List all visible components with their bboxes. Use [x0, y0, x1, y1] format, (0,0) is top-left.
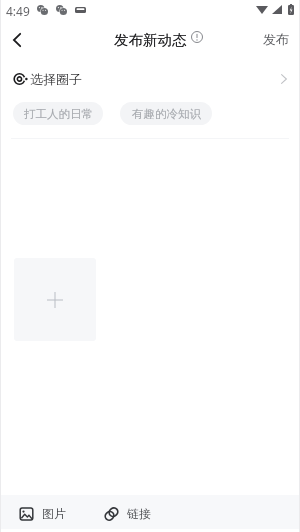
button[interactable]: 链接 — [101, 503, 154, 524]
button[interactable]: Back — [1, 20, 33, 60]
button[interactable]: Info — [188, 28, 206, 46]
staticText: 4:49 — [6, 3, 30, 19]
staticText: 发布新动态 — [114, 31, 187, 49]
button[interactable]: 有趣的冷知识 — [120, 102, 212, 125]
staticText: 图片 — [42, 506, 66, 521]
staticText: 有趣的冷知识 — [132, 107, 201, 121]
staticText: 发布新动态 — [114, 31, 187, 49]
button[interactable]: 打工人的日常 — [13, 102, 103, 125]
staticText: 发布 — [263, 31, 289, 47]
button[interactable]: 选择圈子 — [0, 62, 300, 96]
staticText: 链接 — [127, 506, 151, 521]
button[interactable]: 发布 — [258, 25, 294, 53]
staticText: 打工人的日常 — [24, 107, 93, 121]
button[interactable]: 图片 — [16, 503, 69, 524]
button[interactable]: Choose circle — [272, 67, 296, 91]
staticText: 选择圈子 — [30, 71, 82, 87]
